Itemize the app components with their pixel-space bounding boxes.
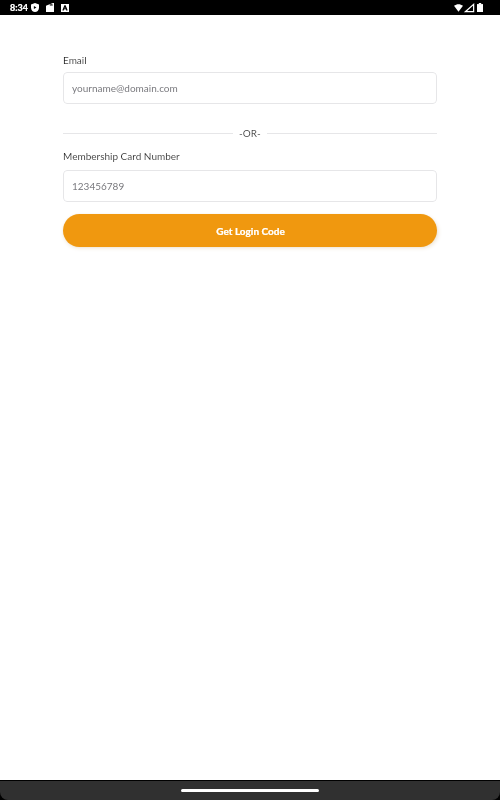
staticText: Membership Card Number bbox=[63, 150, 180, 162]
staticText: yourname@domain.com bbox=[72, 82, 178, 94]
staticText: 8:34 bbox=[10, 2, 28, 13]
staticText: -OR- bbox=[239, 127, 261, 139]
staticText: Email bbox=[63, 54, 87, 66]
button[interactable]: Get Login Code bbox=[63, 214, 437, 247]
staticText: 123456789 bbox=[72, 180, 125, 192]
button[interactable]: Email input bbox=[63, 72, 437, 104]
button[interactable]: Membership Card Number input bbox=[63, 170, 437, 202]
button[interactable]: Home bbox=[181, 789, 319, 792]
staticText: Get Login Code bbox=[216, 225, 285, 237]
